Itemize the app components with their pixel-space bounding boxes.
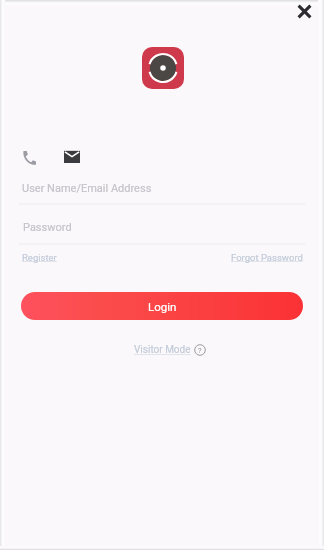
button[interactable]: Phone login (14, 143, 42, 171)
staticText: Login (148, 300, 177, 313)
staticText: Register (22, 252, 57, 263)
staticText: Password (23, 221, 72, 234)
button[interactable]: Login (21, 292, 303, 320)
staticText: Visitor Mode (134, 344, 191, 356)
button[interactable]: Register (22, 252, 57, 263)
button[interactable]: Close (290, 0, 318, 25)
staticText: User Name/Email Address (22, 182, 152, 195)
staticText: ? (198, 346, 202, 355)
button[interactable]: Help (194, 344, 206, 356)
staticText: Forgot Password (231, 252, 303, 263)
button[interactable]: Email login (58, 141, 86, 169)
button[interactable]: Forgot Password (231, 252, 303, 263)
button[interactable]: Visitor Mode (134, 344, 191, 356)
